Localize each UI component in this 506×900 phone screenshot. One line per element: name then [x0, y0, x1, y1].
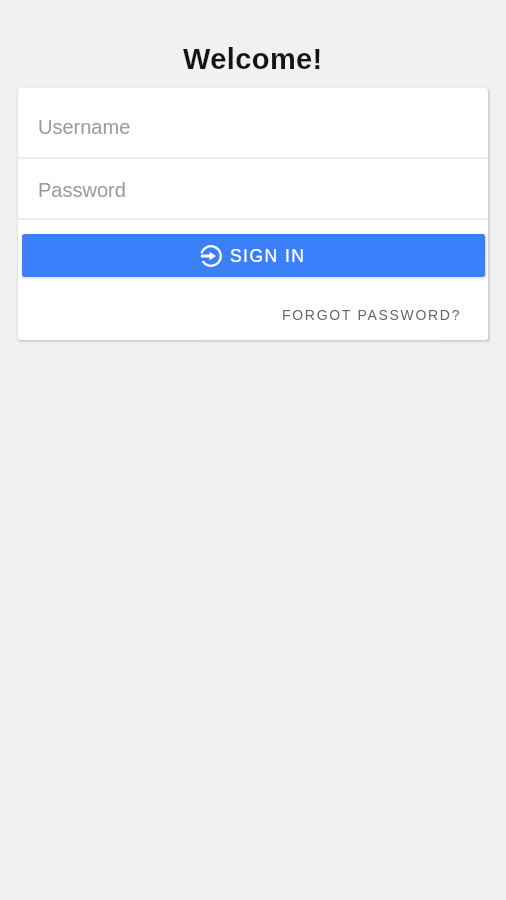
- staticText: FORGOT PASSWORD?: [282, 307, 462, 323]
- button[interactable]: FORGOT PASSWORD?: [270, 277, 488, 335]
- staticText: Username: [38, 116, 131, 138]
- button[interactable]: Password: [18, 159, 488, 218]
- button[interactable]: Username: [18, 88, 488, 157]
- staticText: Password: [38, 179, 126, 201]
- other: Sign in: [200, 245, 222, 267]
- staticText: SIGN IN: [230, 246, 306, 266]
- staticText: Welcome!: [183, 43, 323, 75]
- button[interactable]: Sign in: [22, 234, 485, 277]
